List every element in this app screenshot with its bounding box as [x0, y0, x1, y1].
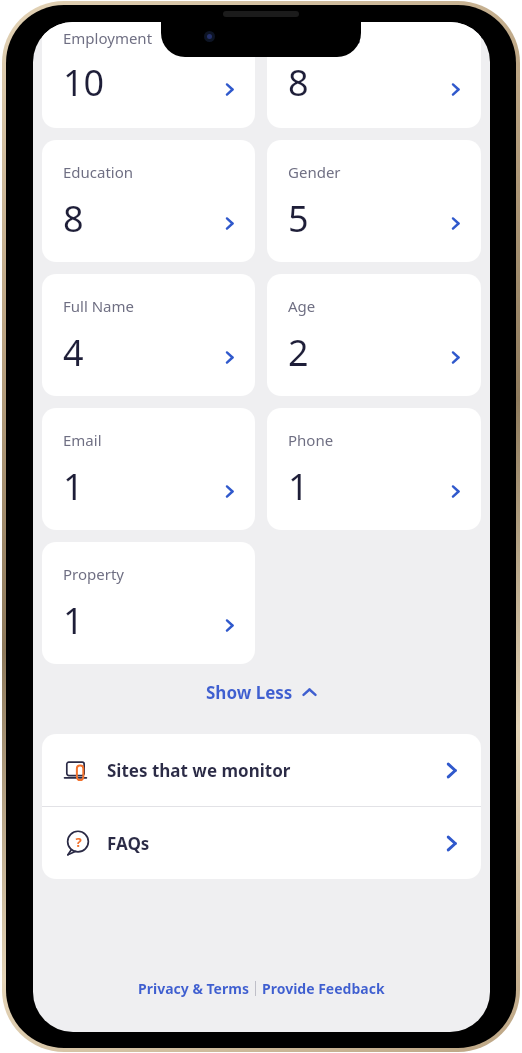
staticText: Sites that we monitor — [107, 759, 291, 782]
staticText: 1 — [288, 462, 309, 511]
staticText: Provide Feedback — [262, 979, 385, 998]
other: FAQs — [64, 829, 92, 857]
button[interactable]: Addresses — [267, 22, 481, 128]
staticText: 1 — [63, 596, 84, 645]
staticText: 8 — [288, 58, 309, 107]
staticText: 1 — [63, 462, 84, 511]
staticText: Addresses — [288, 28, 361, 48]
button[interactable]: Education — [42, 140, 255, 262]
staticText: 8 — [63, 194, 84, 243]
button[interactable]: Full Name — [42, 274, 255, 396]
staticText: Show Less — [206, 681, 293, 704]
staticText: Gender — [288, 162, 341, 182]
button[interactable]: Employment — [42, 22, 255, 128]
staticText: Privacy & Terms — [138, 979, 249, 998]
button[interactable]: Gender — [267, 140, 481, 262]
button[interactable]: Provide Feedback — [256, 975, 391, 1002]
button[interactable]: Property — [42, 542, 255, 664]
button[interactable]: Age — [267, 274, 481, 396]
button[interactable]: Phone — [267, 408, 481, 530]
other: Sites that we monitor — [64, 756, 92, 784]
staticText: Age — [288, 296, 316, 316]
button[interactable]: Privacy & Terms — [132, 975, 255, 1002]
staticText: Employment — [63, 28, 153, 48]
button[interactable]: Sites that we monitor — [42, 734, 481, 806]
staticText: 10 — [63, 58, 105, 107]
staticText: Education — [63, 162, 134, 182]
button[interactable]: Show Less — [33, 664, 490, 720]
staticText: Property — [63, 564, 124, 584]
staticText: 4 — [63, 328, 84, 377]
staticText: Phone — [288, 430, 334, 450]
button[interactable]: Email — [42, 408, 255, 530]
staticText: Full Name — [63, 296, 134, 316]
staticText: Email — [63, 430, 102, 450]
button[interactable]: FAQs — [42, 807, 481, 879]
staticText: ? — [75, 833, 82, 851]
staticText: 5 — [288, 194, 309, 243]
staticText: 2 — [288, 328, 309, 377]
staticText: FAQs — [107, 832, 150, 855]
